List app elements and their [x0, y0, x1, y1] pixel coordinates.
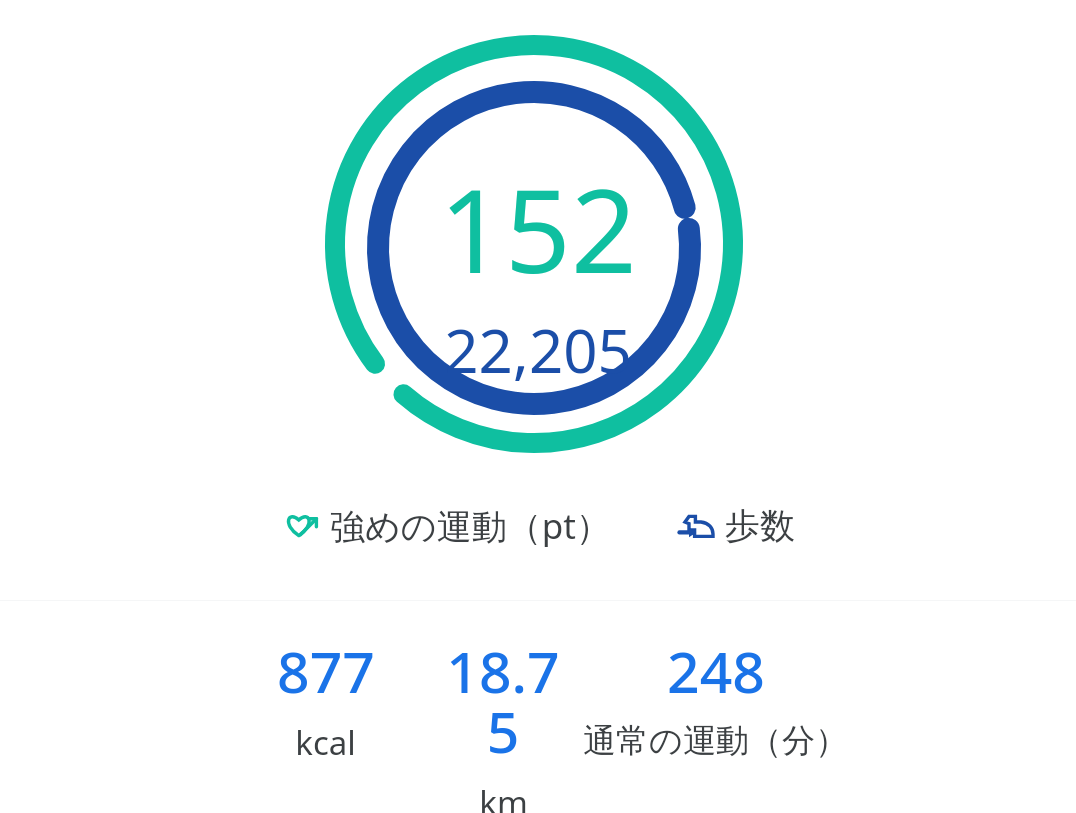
- staticText: 877: [277, 632, 375, 710]
- other: Heart points: [282, 506, 322, 546]
- button[interactable]: 18.75: [433, 628, 573, 813]
- staticText: 強めの運動（pt）: [330, 502, 611, 550]
- staticText: 歩数: [725, 504, 795, 548]
- staticText: 152: [439, 150, 637, 307]
- other: Steps: [677, 506, 717, 546]
- button[interactable]: Steps: [673, 500, 799, 552]
- staticText: 通常の運動（分）: [583, 720, 848, 762]
- button[interactable]: Heart points: [278, 498, 615, 554]
- staticText: 22,205: [444, 309, 632, 391]
- staticText: 18.75: [433, 632, 573, 770]
- button[interactable]: 877: [218, 628, 433, 769]
- staticText: 248: [667, 632, 765, 710]
- staticText: km: [479, 780, 528, 813]
- button[interactable]: 248: [573, 628, 858, 766]
- button[interactable]: 152: [0, 0, 1076, 490]
- staticText: kcal: [295, 720, 356, 765]
